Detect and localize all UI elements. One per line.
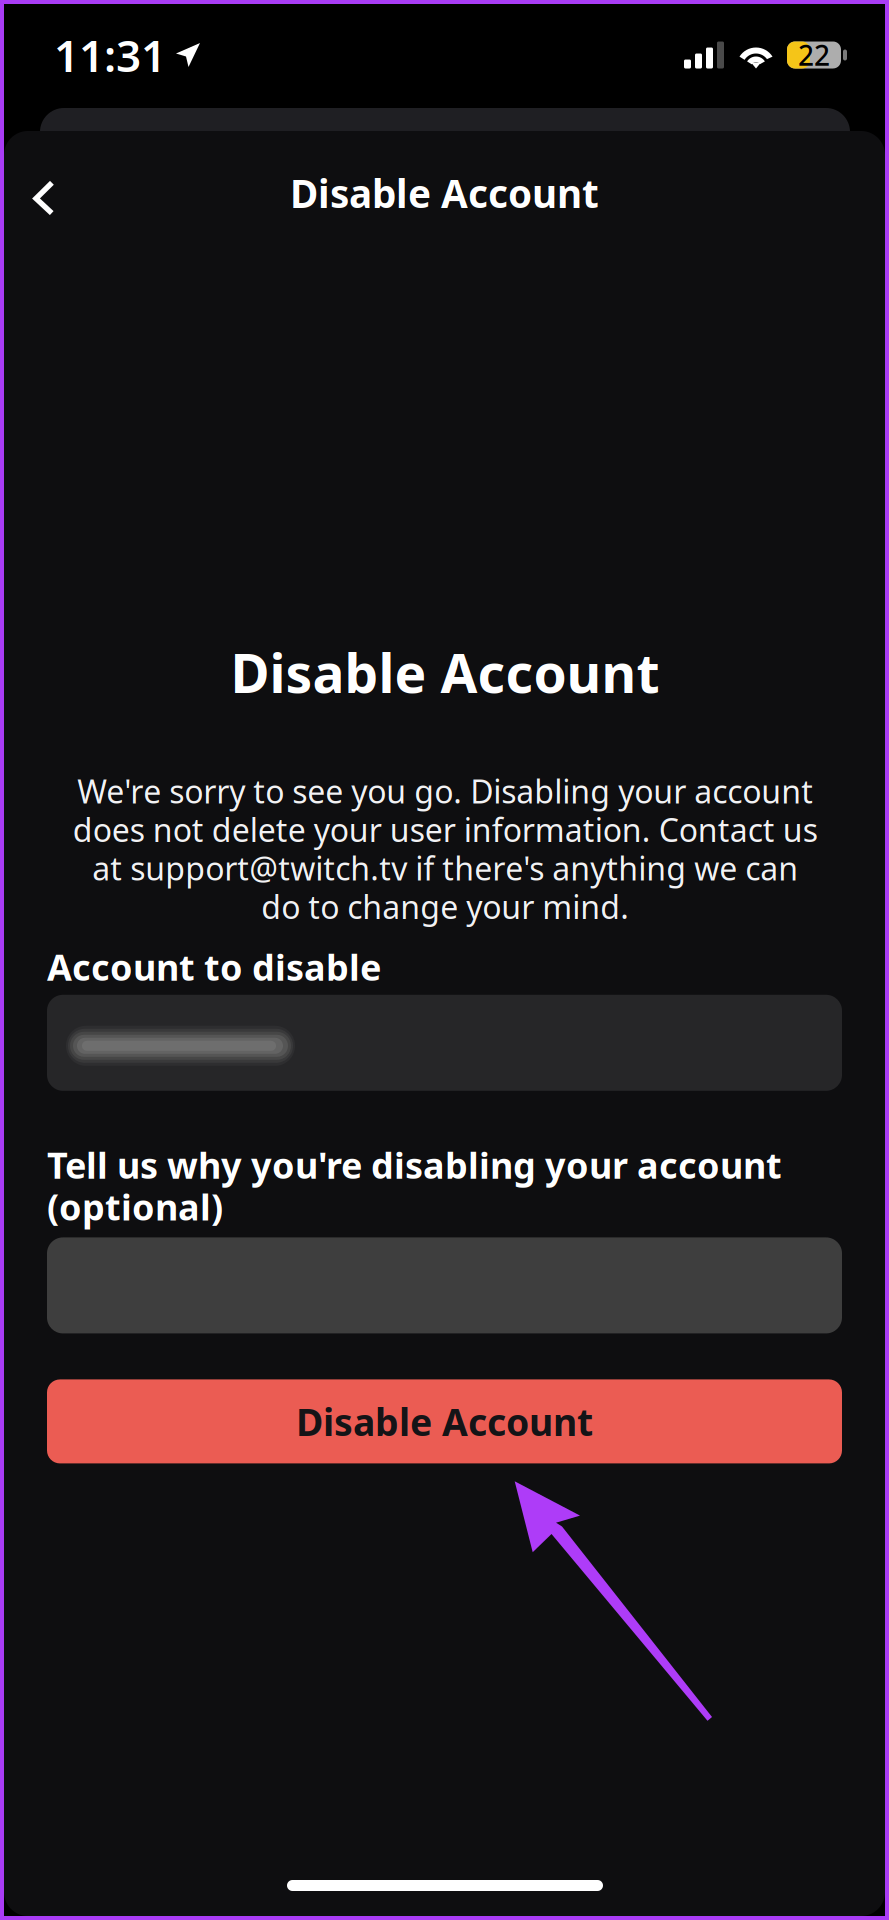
button[interactable]: Back	[11, 158, 77, 238]
staticText: We're sorry to see you go. Disabling you…	[72, 770, 817, 928]
staticText: 22	[798, 36, 830, 74]
staticText: Account to disable	[47, 943, 381, 991]
staticText: 11:31	[54, 26, 166, 84]
staticText: Disable Account	[296, 1397, 593, 1446]
staticText: Disable Account	[290, 167, 599, 219]
staticText: Disable Account	[230, 637, 659, 708]
button[interactable]: Disable Account	[47, 1379, 842, 1463]
staticText: Tell us why you're disabling your accoun…	[47, 1141, 782, 1230]
